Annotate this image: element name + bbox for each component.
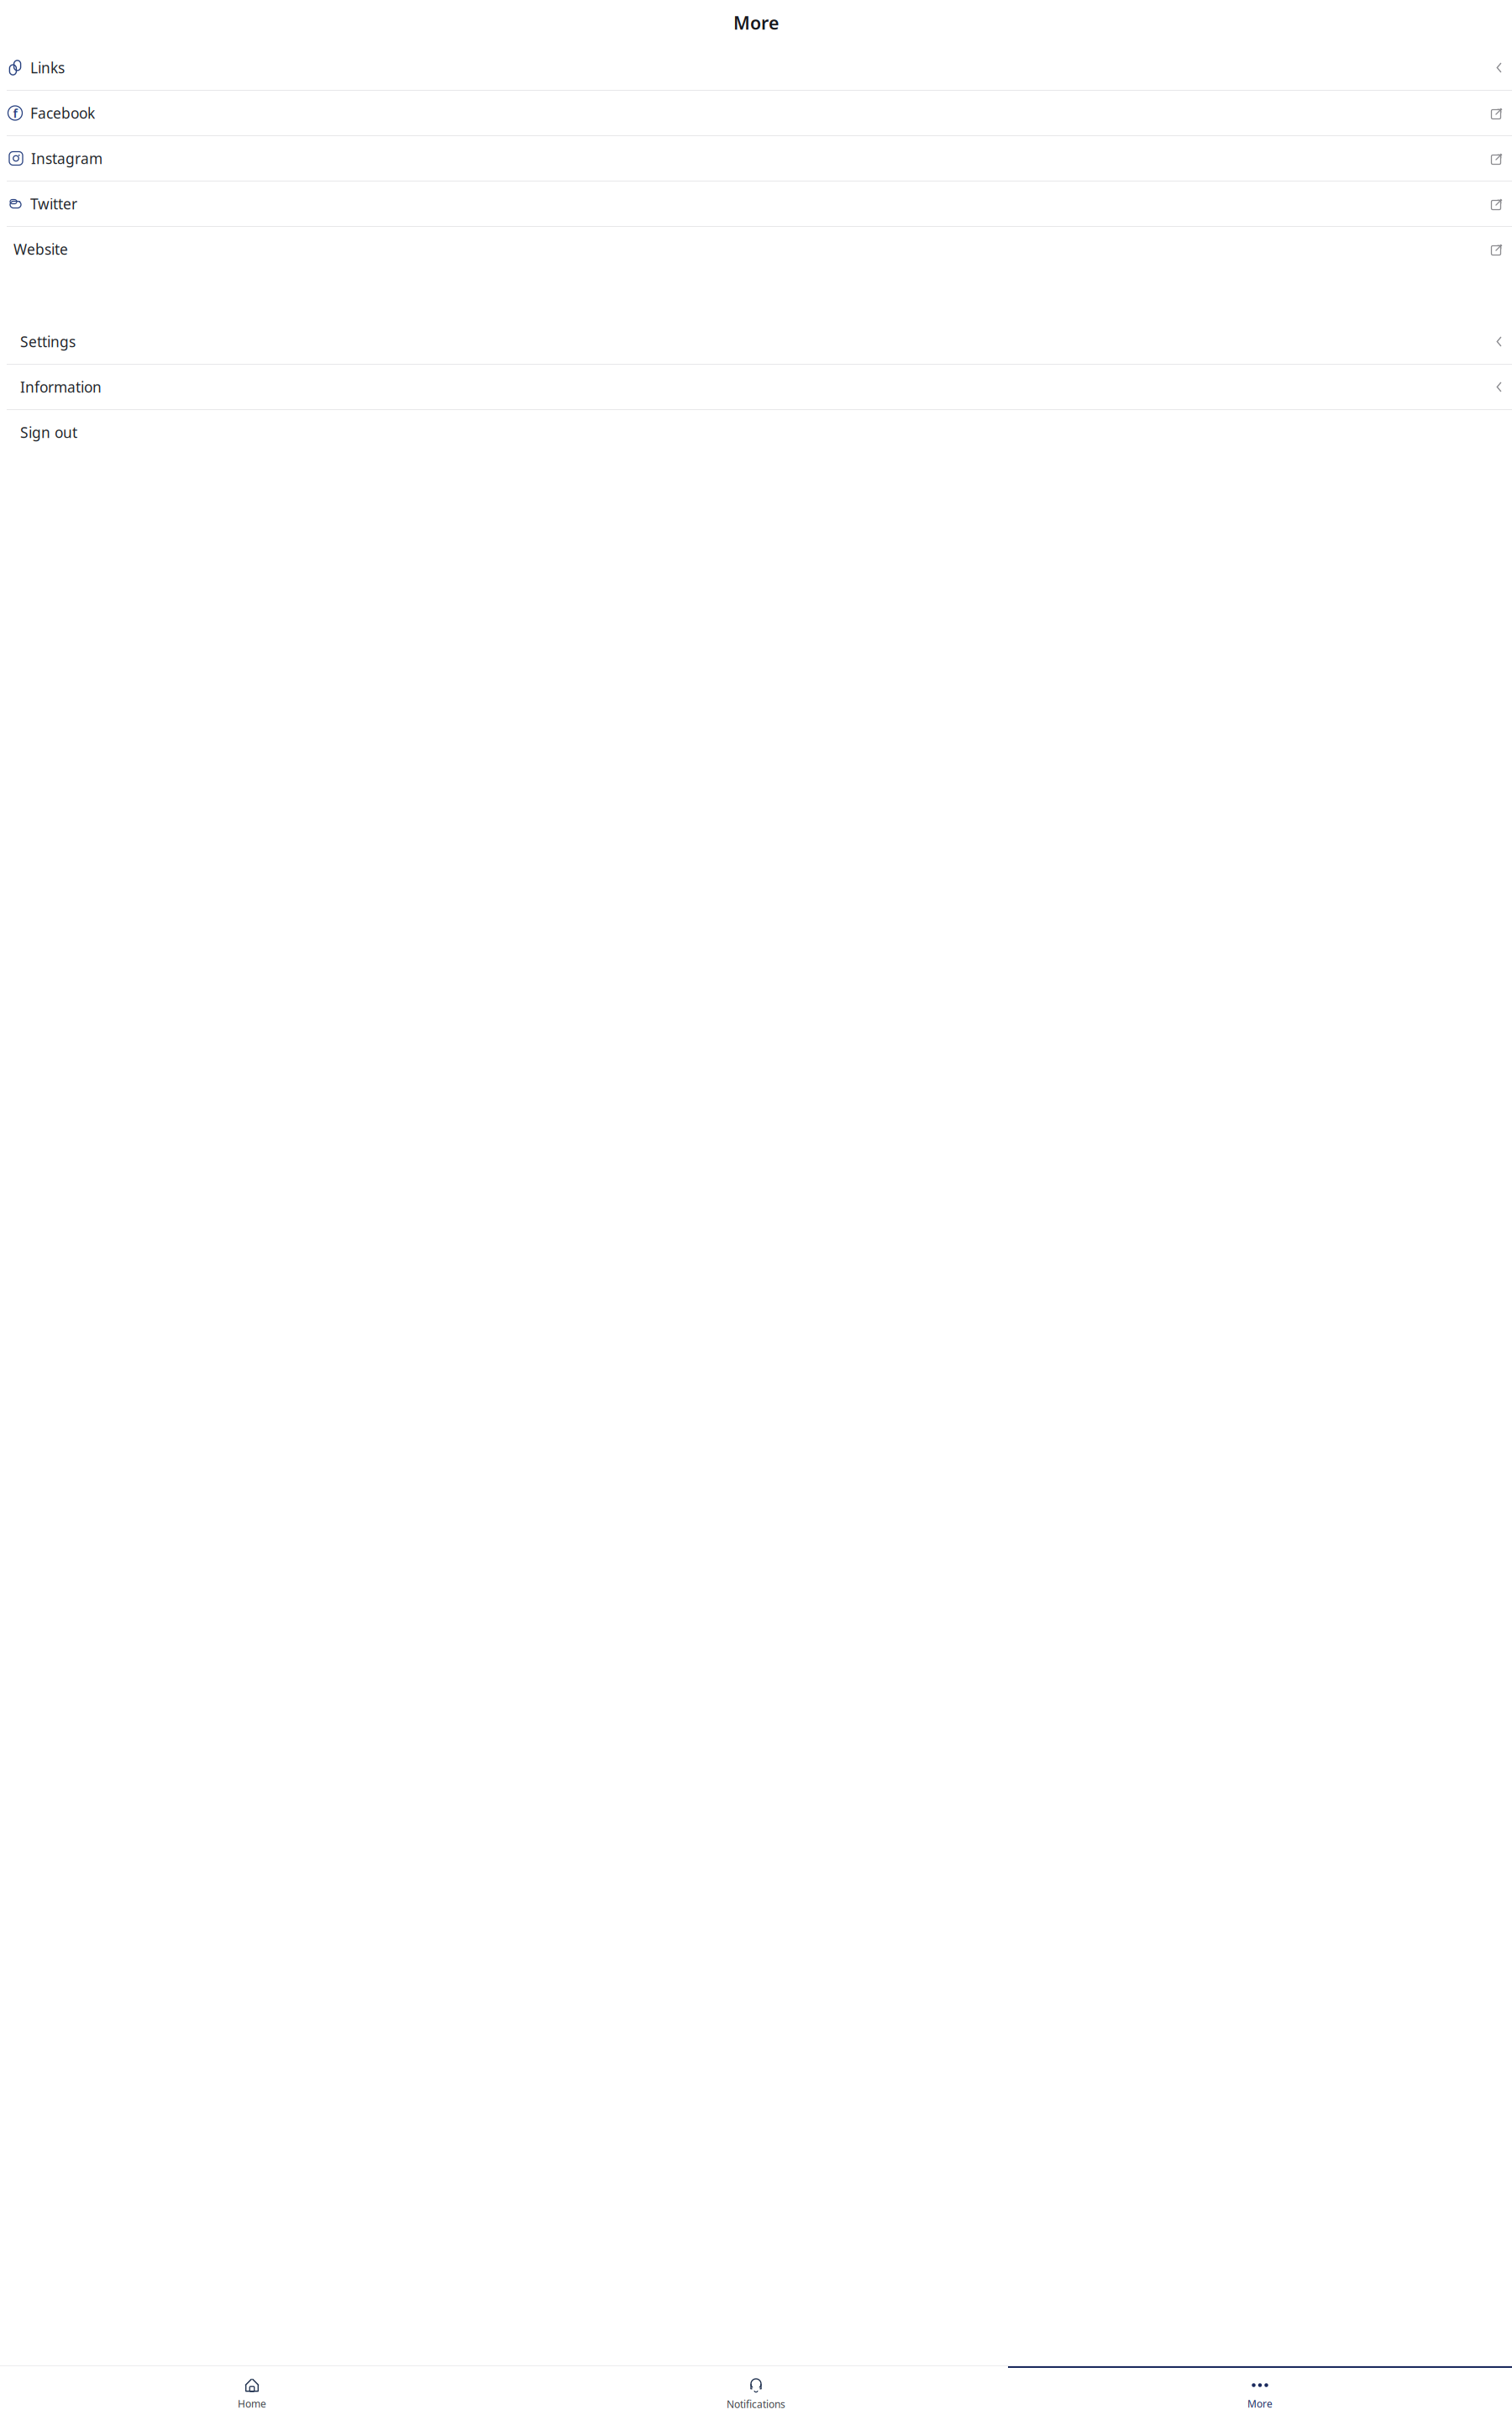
staticText: f — [13, 105, 17, 121]
button[interactable]: Twitter — [0, 181, 1512, 226]
staticText: Twitter — [30, 194, 77, 213]
staticText: Instagram — [31, 149, 102, 168]
staticText: More — [1247, 2397, 1273, 2410]
button[interactable]: Home — [0, 2366, 504, 2420]
button[interactable]: Sign out — [0, 410, 1512, 455]
staticText: Website — [13, 239, 68, 259]
button[interactable]: Notifications — [504, 2366, 1008, 2420]
staticText: More — [733, 11, 779, 35]
button[interactable]: Settings — [0, 319, 1512, 364]
staticText: Facebook — [30, 103, 95, 123]
button[interactable]: f — [0, 91, 1512, 135]
staticText: Notifications — [727, 2397, 785, 2411]
button[interactable]: Instagram — [0, 136, 1512, 181]
button[interactable]: Website — [0, 227, 1512, 271]
staticText: Sign out — [20, 423, 77, 442]
staticText: Home — [238, 2397, 266, 2410]
staticText: Information — [20, 377, 102, 397]
button[interactable]: Information — [0, 365, 1512, 409]
staticText: Settings — [20, 332, 76, 351]
staticText: Links — [30, 58, 65, 77]
button[interactable]: Links — [0, 45, 1512, 90]
button[interactable]: More — [1008, 2366, 1512, 2420]
